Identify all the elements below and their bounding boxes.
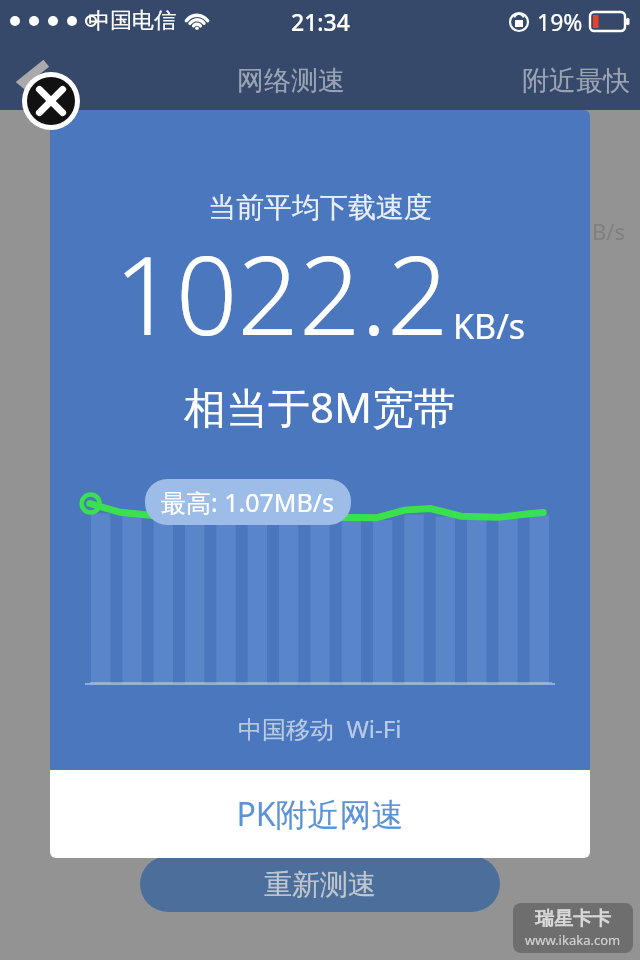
staticText: 重新测速 — [264, 867, 376, 902]
staticText: 1022.2 — [114, 220, 449, 367]
button[interactable]: Close — [22, 72, 80, 130]
staticText: www.ikaka.com — [525, 931, 621, 949]
staticText: 瑞星卡卡 — [535, 907, 611, 931]
staticText: 最高: 1.07MB/s — [161, 485, 335, 519]
button[interactable]: 附近最快 — [522, 64, 630, 98]
button[interactable]: PK附近网速 — [50, 770, 590, 858]
staticText: 网络测速 — [237, 64, 345, 98]
staticText: KB/s — [453, 303, 526, 349]
staticText: 相当于8M宽带 — [184, 378, 457, 435]
staticText: B/s — [592, 216, 626, 246]
staticText: PK附近网速 — [236, 792, 404, 836]
staticText: 21:34 — [291, 6, 350, 37]
button[interactable]: Back — [14, 62, 54, 102]
staticText: 中国电信 — [88, 7, 176, 35]
staticText: 19% — [537, 6, 583, 37]
staticText: 当前平均下载速度 — [208, 190, 432, 225]
staticText: 中国移动 Wi-Fi — [238, 712, 402, 745]
button[interactable]: 重新测速 — [140, 856, 500, 912]
